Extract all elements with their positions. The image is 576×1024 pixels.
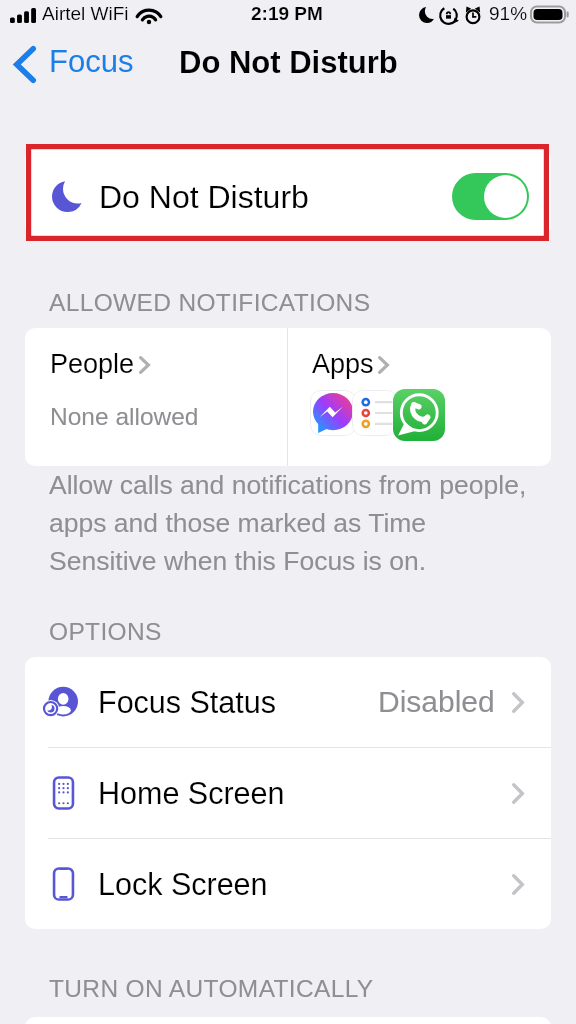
staticText: Home Screen [98,776,285,810]
button[interactable]: Focus [6,40,146,88]
staticText: None allowed [50,403,199,430]
staticText: 2:19 PM [251,3,323,24]
button[interactable]: Do Not Disturb [25,149,551,236]
staticText: TURN ON AUTOMATICALLY [49,975,374,1002]
staticText: OPTIONS [49,618,162,645]
staticText: Airtel WiFi [42,3,129,24]
staticText: People [50,349,135,379]
staticText: ALLOWED NOTIFICATIONS [49,289,371,316]
button[interactable]: People [25,328,287,466]
staticText: Apps [312,349,374,379]
staticText: Disabled [378,685,495,719]
staticText: Allow calls and notifications from peopl… [49,470,529,576]
button[interactable]: Lock Screen [25,839,551,929]
staticText: Focus [49,44,134,79]
staticText: Do Not Disturb [179,45,398,80]
staticText: 91% [489,3,528,24]
button[interactable]: Apps [288,328,551,466]
button[interactable]: Do Not Disturb toggle [452,173,529,220]
button[interactable]: Home Screen [25,748,551,838]
staticText: Focus Status [98,685,276,719]
staticText: Do Not Disturb [99,179,309,215]
staticText: Lock Screen [98,867,268,901]
button[interactable]: Focus Status [25,657,551,747]
